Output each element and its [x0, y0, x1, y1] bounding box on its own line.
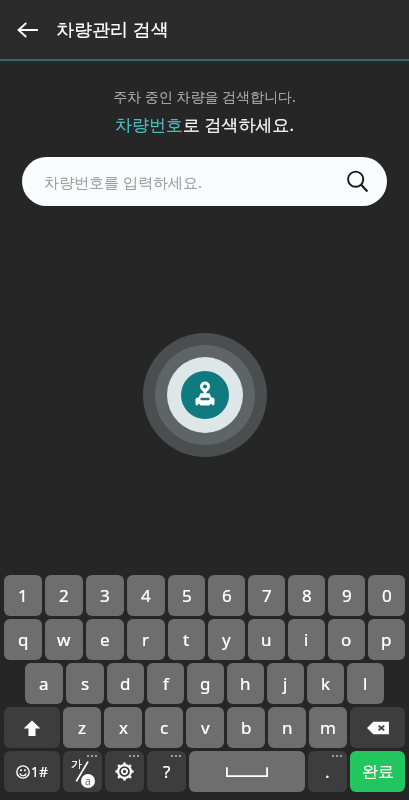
button[interactable]: 2 — [45, 575, 83, 616]
staticText: a — [39, 672, 49, 695]
staticText: 완료 — [362, 762, 394, 782]
staticText: 4 — [141, 584, 151, 607]
button[interactable]: t — [168, 619, 205, 660]
other: Search — [346, 170, 369, 193]
staticText: s — [81, 672, 90, 695]
staticText: 2 — [59, 584, 69, 607]
staticText: j — [283, 672, 288, 695]
staticText: . — [325, 760, 330, 783]
button[interactable]: Space — [189, 751, 305, 792]
button[interactable]: v — [186, 707, 224, 748]
button[interactable]: z — [63, 707, 101, 748]
button[interactable]: 5 — [168, 575, 205, 616]
button[interactable]: Shift — [4, 707, 60, 748]
staticText: 가 — [71, 757, 82, 771]
staticText: u — [261, 628, 272, 651]
button[interactable]: d — [107, 663, 144, 704]
staticText: i — [304, 628, 309, 651]
staticText: 차량번호를 입력하세요. — [44, 172, 346, 192]
button[interactable]: 0 — [368, 575, 405, 616]
staticText: 3 — [100, 584, 110, 607]
staticText: e — [100, 628, 110, 651]
staticText: 7 — [262, 584, 272, 607]
button[interactable]: l — [347, 663, 384, 704]
button[interactable]: r — [127, 619, 165, 660]
button[interactable]: p — [368, 619, 405, 660]
button[interactable]: 6 — [208, 575, 245, 616]
button[interactable]: u — [248, 619, 285, 660]
button[interactable]: f — [147, 663, 184, 704]
staticText: d — [120, 672, 131, 695]
staticText: 차량관리 검색 — [56, 17, 169, 42]
button[interactable]: 8 — [288, 575, 325, 616]
button[interactable]: 3 — [86, 575, 124, 616]
button[interactable]: k — [307, 663, 344, 704]
staticText: h — [240, 672, 251, 695]
staticText: m — [320, 716, 336, 739]
button[interactable]: x — [104, 707, 142, 748]
staticText: 9 — [342, 584, 352, 607]
button[interactable]: m — [309, 707, 347, 748]
staticText: 차량번호로 검색하세요. — [115, 113, 294, 136]
staticText: w — [57, 628, 71, 651]
button[interactable]: h — [227, 663, 264, 704]
button[interactable]: . — [308, 751, 347, 792]
staticText: x — [119, 716, 128, 739]
button[interactable]: Back — [0, 2, 56, 58]
button[interactable]: Settings — [105, 751, 144, 792]
button[interactable]: j — [267, 663, 304, 704]
button[interactable]: s — [66, 663, 104, 704]
button[interactable]: 4 — [127, 575, 165, 616]
button[interactable]: 9 — [328, 575, 365, 616]
staticText: ? — [163, 760, 171, 783]
staticText: o — [341, 628, 352, 651]
button[interactable]: q — [4, 619, 42, 660]
staticText: r — [142, 628, 150, 651]
button[interactable]: b — [227, 707, 265, 748]
button[interactable]: a — [25, 663, 63, 704]
staticText: c — [160, 716, 169, 739]
button[interactable]: 차량번호를 입력하세요. — [22, 157, 387, 206]
button[interactable]: i — [288, 619, 325, 660]
staticText: 1# — [31, 762, 49, 781]
button[interactable]: Backspace — [350, 707, 405, 748]
staticText: g — [200, 672, 211, 695]
staticText: 1 — [18, 584, 28, 607]
staticText: 8 — [302, 584, 312, 607]
staticText: z — [78, 716, 86, 739]
button[interactable]: ? — [147, 751, 186, 792]
button[interactable]: 완료 — [350, 751, 405, 792]
staticText: p — [381, 628, 392, 651]
button[interactable]: y — [208, 619, 245, 660]
staticText: y — [222, 628, 231, 651]
button[interactable]: n — [268, 707, 306, 748]
staticText: 6 — [222, 584, 232, 607]
staticText: v — [201, 716, 210, 739]
button[interactable]: o — [328, 619, 365, 660]
button[interactable]: g — [187, 663, 224, 704]
staticText: t — [183, 628, 190, 651]
staticText: 주차 중인 차량을 검색합니다. — [113, 87, 296, 106]
staticText: q — [18, 628, 29, 651]
staticText: 0 — [382, 584, 392, 607]
staticText: 5 — [182, 584, 192, 607]
button[interactable]: c — [145, 707, 183, 748]
button[interactable]: w — [45, 619, 83, 660]
button[interactable]: Change language — [63, 751, 102, 792]
staticText: a — [85, 774, 91, 788]
button[interactable]: e — [86, 619, 124, 660]
staticText: l — [363, 672, 368, 695]
staticText: f — [163, 672, 169, 695]
staticText: b — [241, 716, 252, 739]
staticText: n — [282, 716, 293, 739]
button[interactable]: 7 — [248, 575, 285, 616]
button[interactable]: 1 — [4, 575, 42, 616]
button[interactable]: Symbols — [4, 751, 60, 792]
staticText: k — [321, 672, 331, 695]
